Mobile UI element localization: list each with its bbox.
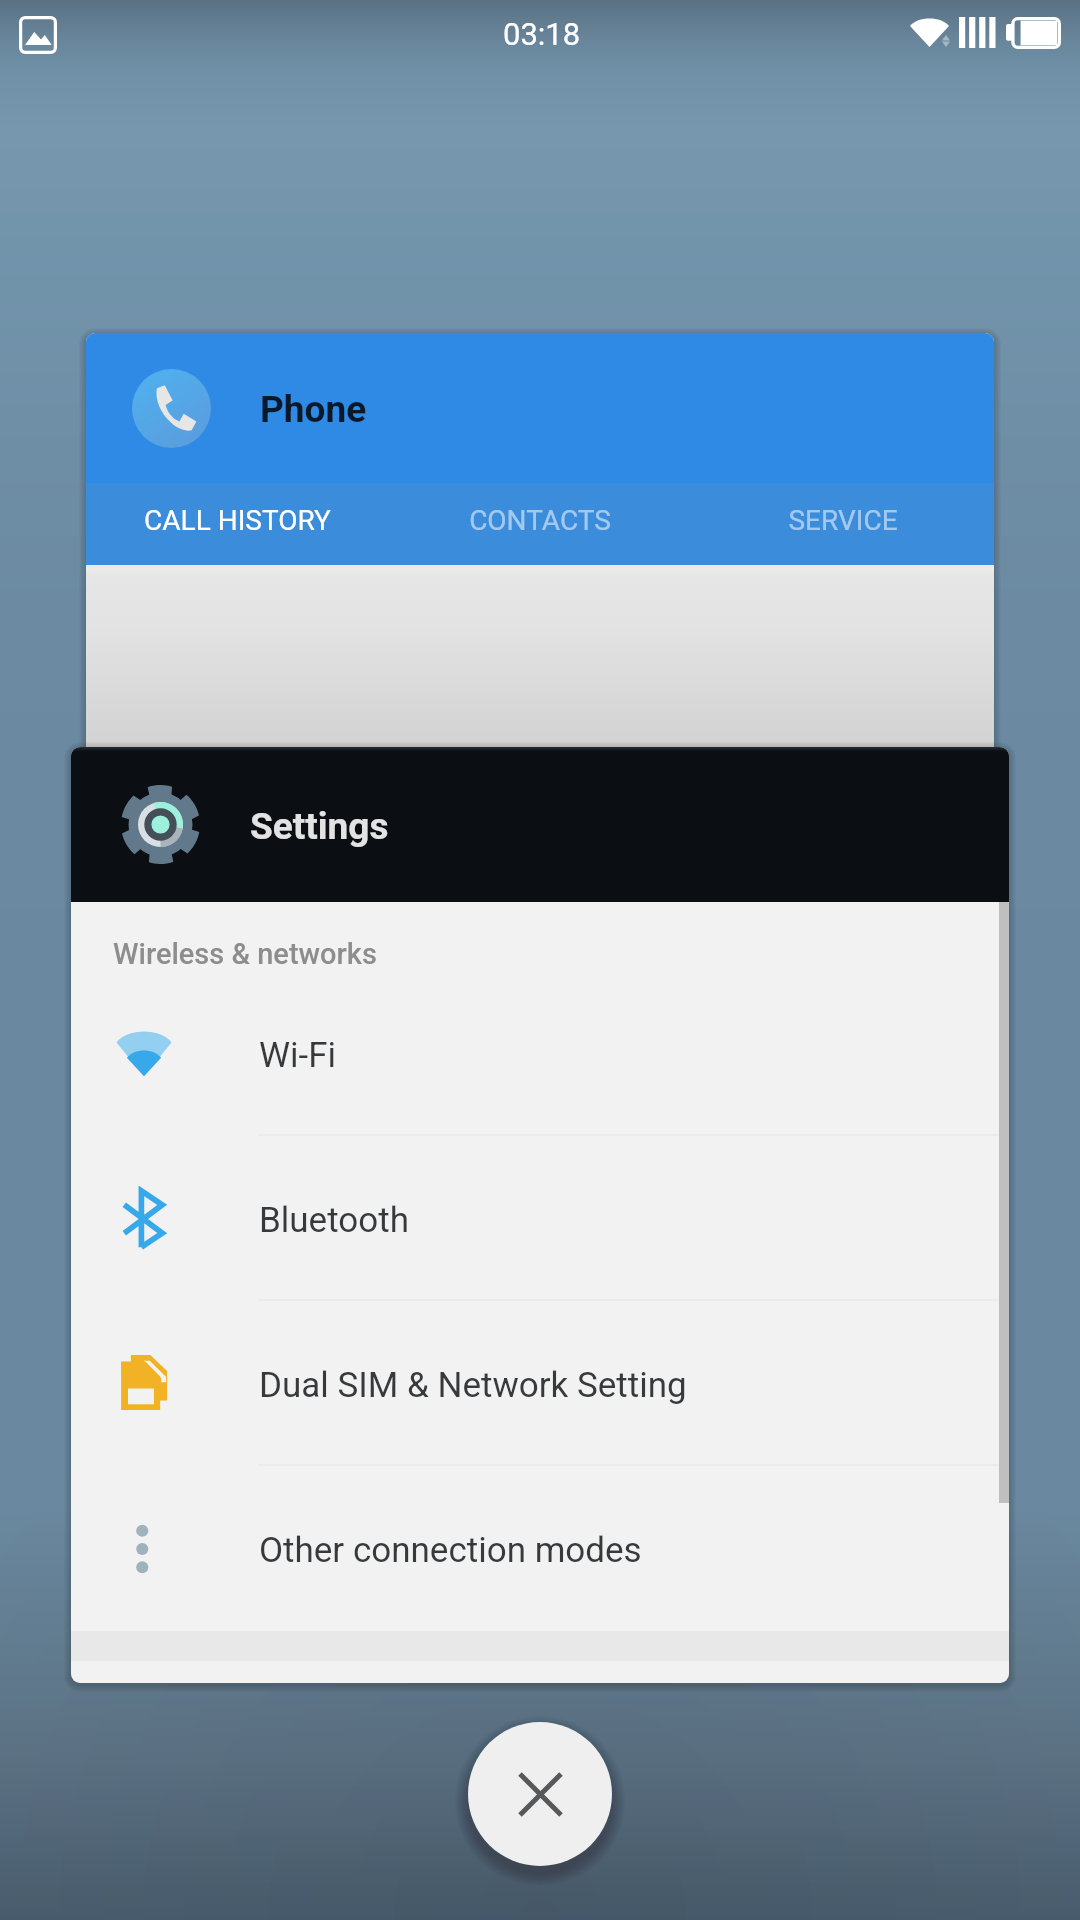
button[interactable]: Dual SIM & Network Setting <box>71 1301 1009 1466</box>
button[interactable]: CALL HISTORY <box>86 483 388 565</box>
staticText: Other connection modes <box>259 1530 642 1571</box>
staticText: Bluetooth <box>259 1200 409 1241</box>
button[interactable]: Phone <box>86 333 994 751</box>
staticText: CONTACTS <box>469 504 611 537</box>
button[interactable]: SERVICE <box>691 483 994 565</box>
staticText: 03:18 <box>503 16 581 52</box>
staticText: Phone <box>260 388 367 431</box>
button[interactable]: Settings <box>71 747 1009 1683</box>
button[interactable]: Settings <box>71 747 1009 902</box>
button[interactable]: Bluetooth <box>71 1136 1009 1301</box>
staticText: Wireless & networks <box>113 937 377 971</box>
staticText: SERVICE <box>788 504 898 537</box>
button[interactable]: Close all <box>468 1722 612 1866</box>
staticText: CALL HISTORY <box>144 504 331 537</box>
button[interactable]: Other connection modes <box>71 1466 1009 1631</box>
staticText: Settings <box>250 805 389 848</box>
button[interactable]: CONTACTS <box>388 483 691 565</box>
staticText: Dual SIM & Network Setting <box>259 1365 687 1406</box>
staticText: Wi-Fi <box>259 1035 337 1076</box>
button[interactable]: Wi-Fi <box>71 971 1009 1136</box>
other: Screenshot <box>19 16 57 54</box>
